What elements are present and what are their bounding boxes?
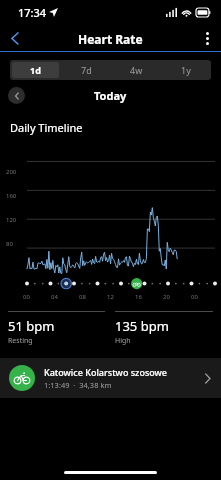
- button[interactable]: Previous day: [8, 87, 25, 104]
- staticText: High: [115, 336, 131, 346]
- staticText: 00: [23, 293, 30, 301]
- staticText: 135 bpm: [115, 317, 169, 335]
- staticText: 200: [6, 168, 17, 176]
- button[interactable]: Back: [0, 25, 30, 52]
- button[interactable]: 135 bpm: [115, 311, 213, 346]
- staticText: Resting: [8, 336, 33, 346]
- button[interactable]: 7d: [63, 62, 109, 78]
- button[interactable]: 51 bpm: [8, 311, 105, 346]
- staticText: 51 bpm: [8, 317, 55, 335]
- button[interactable]: Katowice Kolarstwo szosowe: [0, 358, 221, 398]
- staticText: 17:34: [18, 5, 47, 20]
- staticText: 120: [6, 216, 17, 224]
- staticText: 7d: [81, 64, 92, 76]
- staticText: 1y: [181, 64, 191, 76]
- staticText: 1d: [30, 64, 41, 76]
- staticText: 1:13:49 · 34,38 km: [44, 380, 112, 390]
- staticText: 80: [6, 240, 13, 248]
- button[interactable]: 1d: [12, 62, 59, 78]
- button[interactable]: 4w: [113, 62, 159, 78]
- staticText: Daily Timeline: [10, 120, 83, 135]
- staticText: 04: [51, 293, 58, 301]
- staticText: 08: [79, 293, 86, 301]
- staticText: 00: [191, 293, 198, 301]
- staticText: 4w: [130, 64, 143, 76]
- staticText: 16: [135, 293, 142, 301]
- staticText: 12: [107, 293, 114, 301]
- staticText: Katowice Kolarstwo szosowe: [44, 366, 168, 378]
- staticText: Today: [94, 88, 127, 103]
- button[interactable]: 1y: [163, 62, 209, 78]
- staticText: 20: [163, 293, 170, 301]
- staticText: Heart Rate: [78, 31, 143, 47]
- staticText: 160: [6, 192, 17, 200]
- button[interactable]: More options: [193, 25, 221, 52]
